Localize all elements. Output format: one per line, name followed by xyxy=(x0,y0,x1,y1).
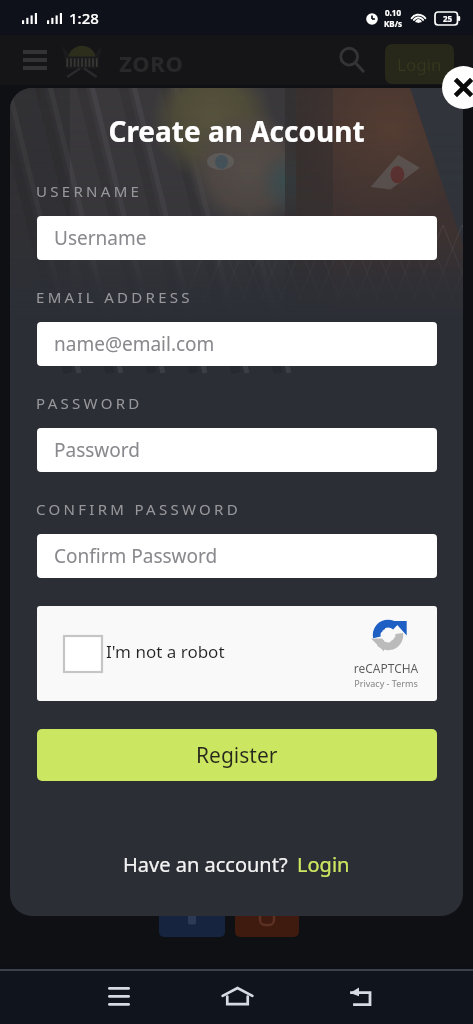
staticText: CONFIRM PASSWORD xyxy=(36,499,241,519)
button[interactable]: Back xyxy=(338,969,386,1024)
staticText: 25 xyxy=(443,13,453,24)
button[interactable]: Confirm Password xyxy=(37,534,437,578)
button[interactable]: Close xyxy=(442,66,473,109)
button[interactable]: Username xyxy=(37,216,437,260)
button[interactable]: Home xyxy=(213,969,261,1024)
staticText: 1:28 xyxy=(69,8,99,28)
staticText: 0.10 xyxy=(385,7,401,18)
staticText: KB/s xyxy=(384,18,402,29)
staticText: Create an Account xyxy=(10,112,463,150)
staticText: Login xyxy=(297,851,350,878)
staticText: Username xyxy=(54,225,147,251)
staticText: EMAIL ADDRESS xyxy=(36,287,193,307)
button[interactable]: Password xyxy=(37,428,437,472)
button[interactable]: Login xyxy=(297,851,350,878)
button[interactable]: I'm not a robot xyxy=(37,606,437,701)
staticText: PASSWORD xyxy=(36,393,143,413)
staticText: name@email.com xyxy=(54,331,215,357)
staticText: Confirm Password xyxy=(54,543,218,569)
button[interactable]: Menu xyxy=(13,35,57,85)
button[interactable]: Recents xyxy=(95,969,143,1024)
button[interactable]: Instagram xyxy=(235,899,299,937)
button[interactable]: Login xyxy=(385,44,454,84)
staticText: USERNAME xyxy=(36,181,143,201)
staticText: Password xyxy=(54,437,140,463)
staticText: reCAPTCHA xyxy=(348,660,424,676)
button[interactable]: Facebook xyxy=(159,899,225,937)
staticText: I'm not a robot xyxy=(106,640,225,663)
button[interactable]: Search xyxy=(330,35,374,85)
staticText: Privacy - Terms xyxy=(348,677,424,689)
staticText: Register xyxy=(196,741,278,770)
staticText: Have an account? xyxy=(123,851,288,878)
staticText: ZORO xyxy=(119,48,184,78)
button[interactable]: name@email.com xyxy=(37,322,437,366)
button[interactable]: Register xyxy=(37,729,437,781)
staticText: Login xyxy=(397,53,442,76)
